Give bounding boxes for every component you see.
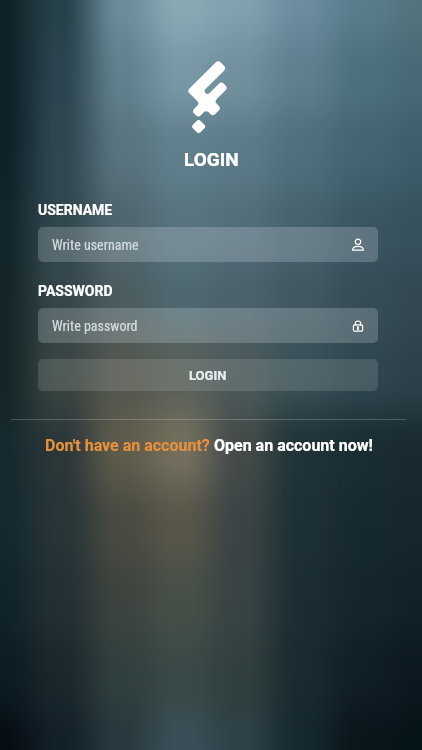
button[interactable]: LOGIN (38, 359, 378, 391)
staticText: LOGIN (184, 148, 239, 170)
staticText: USERNAME (38, 202, 113, 218)
button[interactable]: Open an account now! (214, 436, 373, 455)
staticText: Write password (52, 318, 351, 334)
staticText: Write username (52, 237, 351, 253)
staticText: LOGIN (189, 368, 227, 383)
staticText: PASSWORD (38, 283, 113, 299)
staticText: Don't have an account? (45, 436, 214, 455)
button[interactable]: Username field (38, 227, 378, 262)
button[interactable]: Password field (38, 308, 378, 343)
